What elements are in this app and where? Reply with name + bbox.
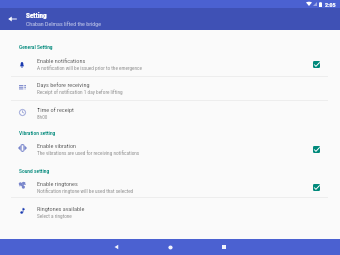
staticText: The vibrations are used for receiving no… bbox=[37, 150, 140, 156]
staticText: Enable ringtones bbox=[37, 180, 78, 187]
staticText: Chaban Delmas lifted the bridge bbox=[26, 20, 101, 27]
staticText: Enable vibration bbox=[37, 142, 77, 149]
staticText: A notification will be issued prior to t… bbox=[37, 65, 142, 71]
button[interactable]: Ringtones available bbox=[0, 200, 340, 224]
staticText: Days before receiving bbox=[37, 81, 90, 88]
staticText: Vibration setting bbox=[19, 130, 56, 136]
staticText: 2:05 bbox=[325, 1, 336, 8]
button[interactable]: Recent apps bbox=[197, 239, 251, 255]
button[interactable]: Enable vibration bbox=[0, 137, 340, 161]
staticText: Sound setting bbox=[19, 168, 50, 174]
button[interactable]: Time of receipt bbox=[0, 101, 340, 125]
staticText: Enable notifications bbox=[37, 57, 86, 64]
staticText: 8h00 bbox=[37, 114, 48, 120]
button[interactable]: Toggle Enable vibration bbox=[309, 142, 323, 156]
staticText: Setting bbox=[26, 11, 47, 19]
staticText: General Setting bbox=[19, 44, 53, 50]
button[interactable]: Back bbox=[89, 239, 143, 255]
staticText: Time of receipt bbox=[37, 106, 74, 113]
staticText: Select a ringtone bbox=[37, 213, 72, 219]
button[interactable]: Enable ringtones bbox=[0, 175, 340, 199]
button[interactable]: Back bbox=[3, 10, 21, 28]
staticText: Notification ringtone will be used that … bbox=[37, 188, 134, 194]
button[interactable]: Toggle Enable notifications bbox=[309, 57, 323, 71]
button[interactable]: Enable notifications bbox=[0, 52, 340, 76]
staticText: Ringtones available bbox=[37, 205, 85, 212]
button[interactable]: Toggle Enable ringtones bbox=[309, 180, 323, 194]
button[interactable]: Home bbox=[143, 239, 197, 255]
button[interactable]: Days before receiving bbox=[0, 76, 340, 100]
staticText: Receipt of notification 1 day before lif… bbox=[37, 89, 123, 95]
